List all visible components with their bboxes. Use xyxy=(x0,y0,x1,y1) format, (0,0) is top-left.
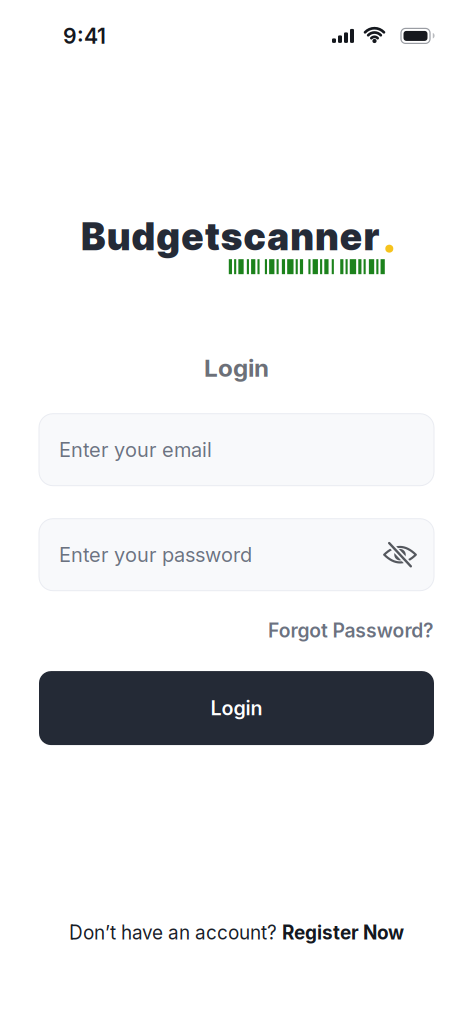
staticText: Enter your email xyxy=(59,438,212,462)
staticText: Budgetscanner xyxy=(81,214,379,259)
staticText: Forgot Password? xyxy=(268,619,434,642)
staticText: Register Now xyxy=(282,921,404,944)
staticText: Login xyxy=(210,696,262,720)
button[interactable]: Login xyxy=(39,671,434,745)
button[interactable]: Enter your email xyxy=(39,414,434,486)
staticText: Enter your password xyxy=(59,543,252,567)
button[interactable]: Register Now xyxy=(282,921,404,944)
staticText: Don’t have an account? xyxy=(69,921,277,944)
button[interactable]: Forgot Password? xyxy=(268,619,434,642)
staticText: 9:41 xyxy=(63,23,106,49)
staticText: Login xyxy=(204,353,269,383)
button[interactable]: Enter your password xyxy=(39,519,434,591)
button[interactable] xyxy=(383,542,417,568)
